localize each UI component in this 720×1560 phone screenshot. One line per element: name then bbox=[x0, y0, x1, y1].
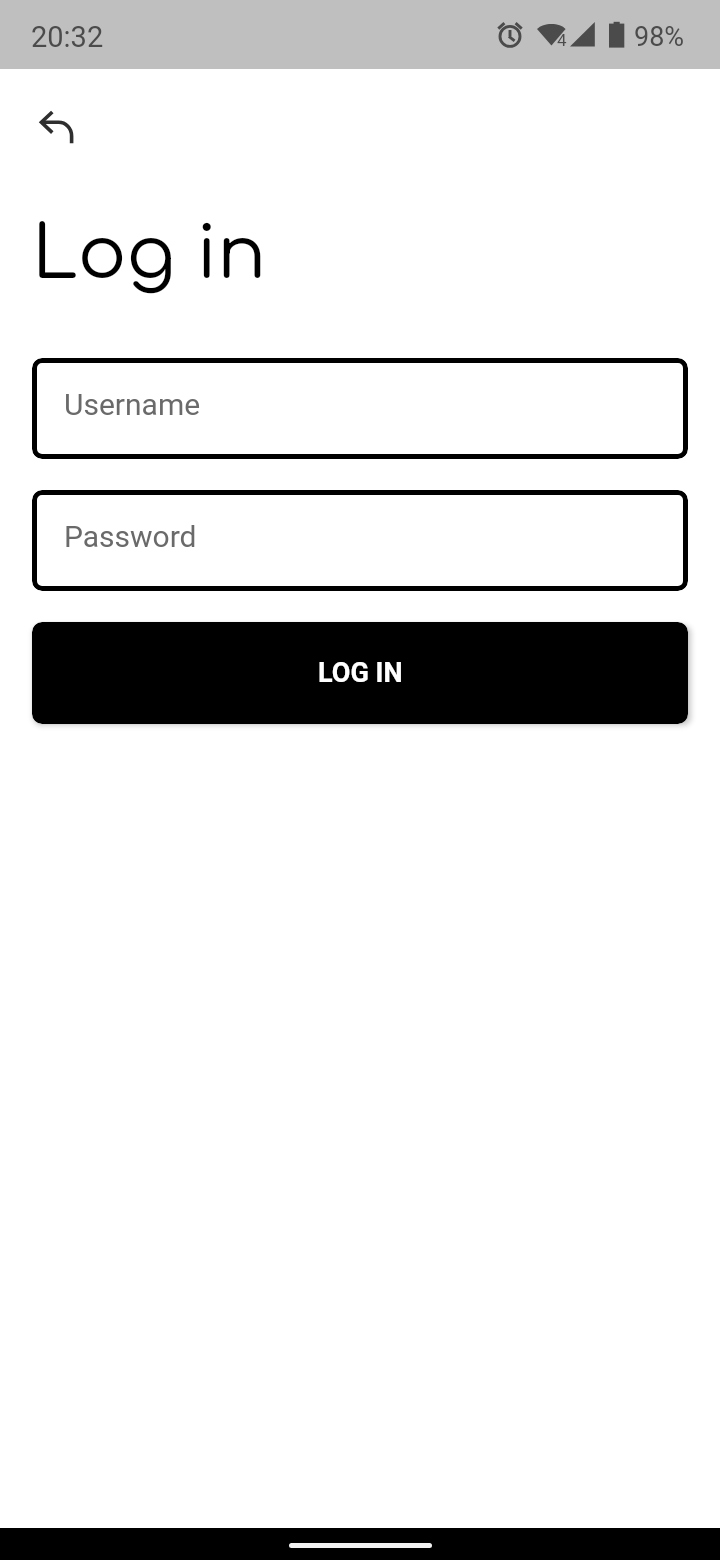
staticText: LOG IN bbox=[318, 657, 403, 689]
button[interactable]: Password bbox=[32, 490, 688, 591]
staticText: Log in bbox=[32, 215, 267, 295]
button[interactable]: LOG IN bbox=[32, 622, 688, 724]
button[interactable]: Username bbox=[32, 358, 688, 459]
staticText: Password bbox=[64, 519, 197, 554]
staticText: Username bbox=[64, 387, 201, 422]
staticText: 20:32 bbox=[31, 20, 104, 54]
staticText: 4 bbox=[557, 30, 567, 50]
button[interactable]: Back bbox=[14, 102, 74, 162]
staticText: 98% bbox=[634, 21, 685, 53]
